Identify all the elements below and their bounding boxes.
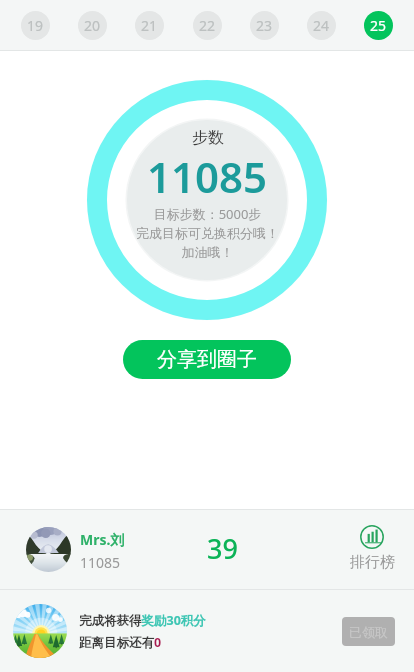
button[interactable]: 20 <box>78 11 107 40</box>
button[interactable]: 23 <box>250 11 279 40</box>
staticText: 21 <box>141 16 158 35</box>
button[interactable]: 分享到圈子 <box>123 340 291 379</box>
staticText: Mrs.刘 <box>80 530 125 549</box>
staticText: 分享到圈子 <box>157 347 257 372</box>
staticText: 22 <box>199 16 216 35</box>
staticText: 完成将获得奖励30积分 <box>79 612 206 629</box>
staticText: 步数 <box>192 128 224 148</box>
staticText: 23 <box>256 16 273 35</box>
staticText: 已领取 <box>349 624 388 640</box>
button[interactable]: 19 <box>21 11 50 40</box>
staticText: 20 <box>84 16 101 35</box>
staticText: 24 <box>313 16 330 35</box>
button[interactable]: 25 <box>364 11 393 40</box>
staticText: 25 <box>370 16 387 35</box>
button[interactable]: 排行榜 <box>344 525 400 572</box>
button[interactable]: 21 <box>135 11 164 40</box>
staticText: 39 <box>207 530 238 567</box>
button[interactable]: 22 <box>193 11 222 40</box>
button[interactable]: 已领取 <box>342 617 395 646</box>
button[interactable]: Mrs.刘 <box>0 510 414 589</box>
staticText: 距离目标还有0 <box>79 634 162 651</box>
staticText: 目标步数：5000步 完成目标可兑换积分哦！ 加油哦！ <box>136 205 279 261</box>
staticText: 19 <box>27 16 44 35</box>
button[interactable]: 24 <box>307 11 336 40</box>
staticText: 11085 <box>80 553 121 572</box>
staticText: 11085 <box>147 148 268 205</box>
staticText: 排行榜 <box>350 553 395 572</box>
